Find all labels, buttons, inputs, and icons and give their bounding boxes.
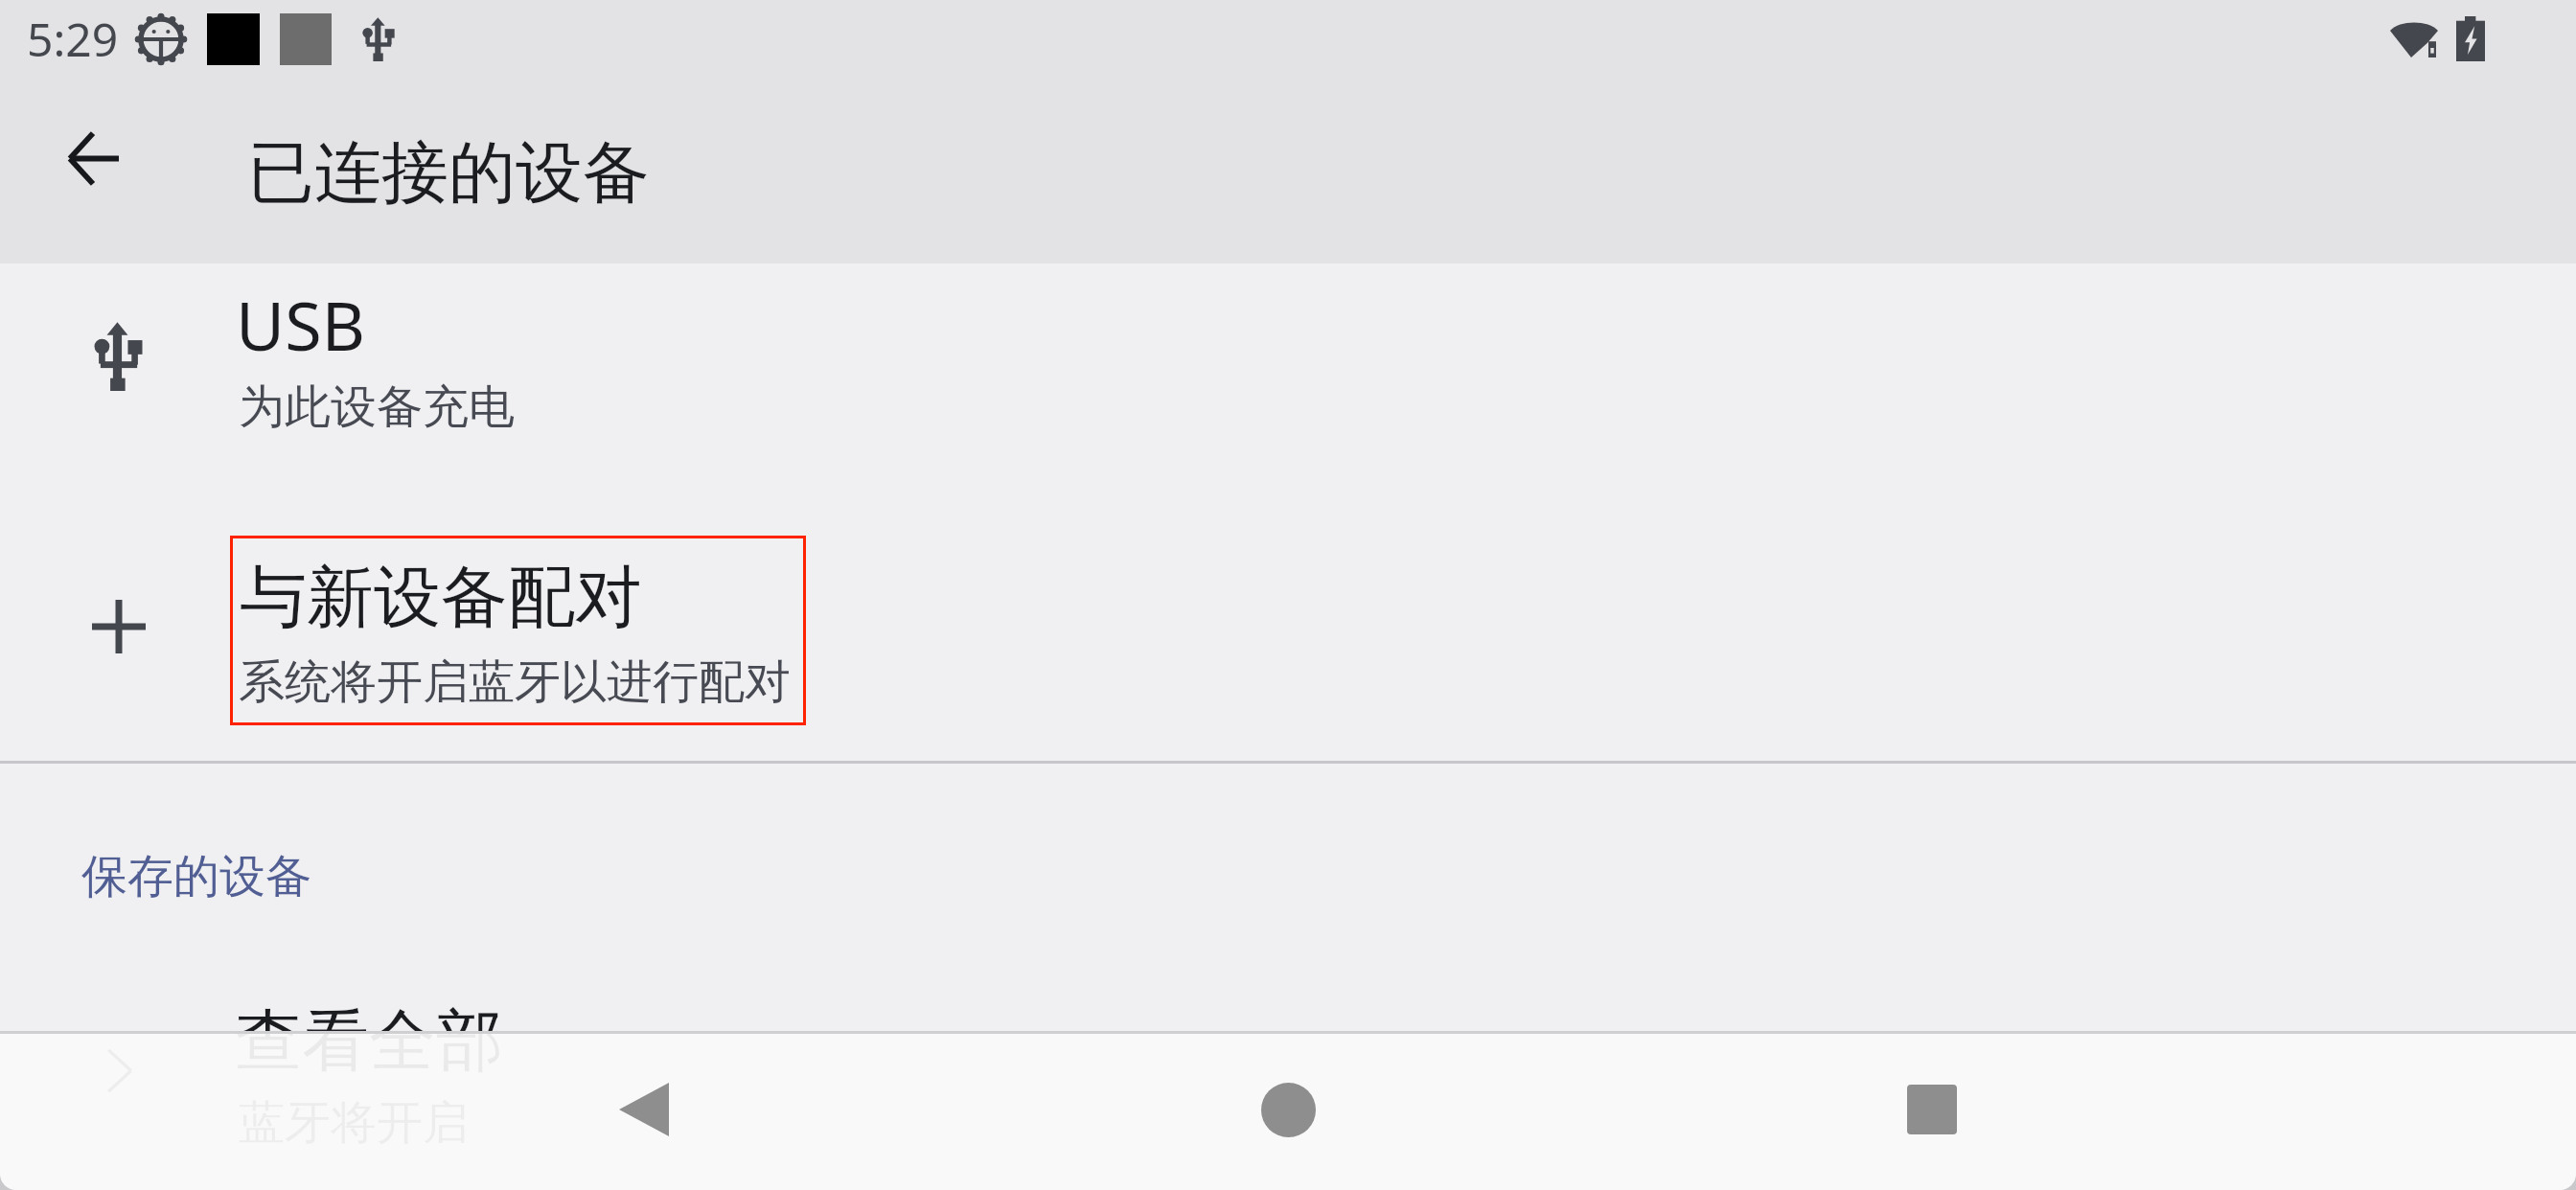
staticText: 已连接的设备 [247,131,650,216]
button[interactable]: 查看全部 [0,999,2576,1190]
button[interactable]: 与新设备配对 [0,447,2576,762]
button[interactable]: USB [0,263,2576,447]
staticText: 与新设备配对 [240,556,642,640]
button[interactable]: Recents [1855,1033,2009,1186]
button[interactable]: Back [567,1033,721,1186]
staticText: 为此设备充电 [239,378,515,436]
button[interactable]: Home [1211,1033,1365,1186]
staticText: 保存的设备 [81,848,311,905]
staticText: 蓝牙将开启 [239,1094,469,1152]
staticText: 查看全部 [235,999,503,1084]
staticText: USB [236,279,366,370]
staticText: 系统将开启蓝牙以进行配对 [239,653,791,711]
staticText: 5:29 [27,8,119,70]
button[interactable]: Back [50,115,136,201]
